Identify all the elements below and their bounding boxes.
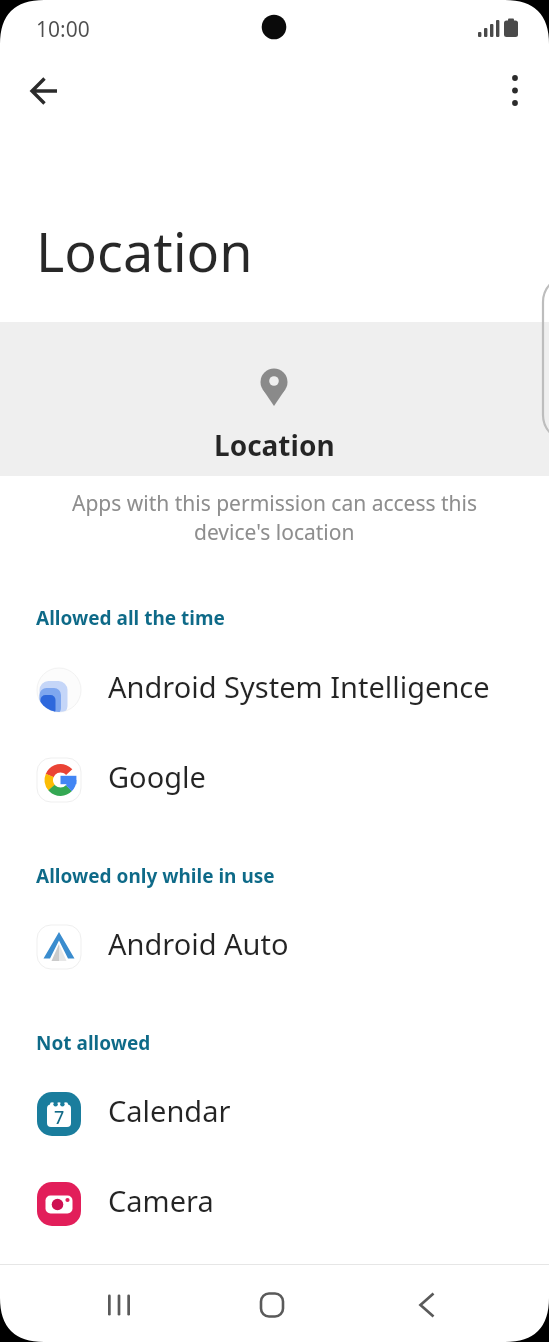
staticText: Location [214,426,335,462]
staticText: Android Auto [108,924,289,963]
staticText: Location [36,214,253,274]
button[interactable] [20,68,68,116]
button[interactable] [222,1279,322,1331]
staticText: Allowed all the time [36,605,225,631]
staticText: device's location [194,518,355,547]
button[interactable] [377,1279,477,1331]
button[interactable]: Google [0,735,549,825]
button[interactable] [497,68,537,108]
staticText: 10:00 [36,15,90,43]
staticText: Android System Intelligence [108,667,490,706]
button[interactable] [69,1279,169,1331]
staticText: Not allowed [36,1030,151,1056]
staticText: Apps with this permission can access thi… [72,489,478,518]
staticText: 7 [54,1105,65,1130]
staticText: Camera [108,1181,214,1220]
button[interactable]: Android Auto [0,902,549,992]
button[interactable]: Android System Intelligence [0,645,549,735]
staticText: Google [108,757,206,796]
staticText: Allowed only while in use [36,863,275,889]
staticText: Calendar [108,1091,231,1130]
button[interactable]: 7 [0,1069,549,1159]
button[interactable]: Camera [0,1159,549,1249]
